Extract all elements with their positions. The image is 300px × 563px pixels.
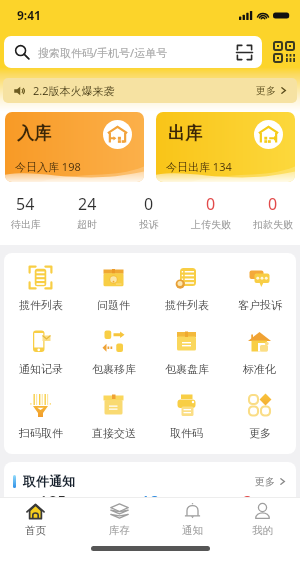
button[interactable]: 0 bbox=[180, 193, 242, 231]
button[interactable]: 54 bbox=[0, 193, 56, 231]
button[interactable]: 通知 bbox=[165, 502, 219, 542]
staticText: 通知 bbox=[182, 524, 203, 537]
staticText: 12 bbox=[141, 491, 160, 513]
staticText: 更多 bbox=[256, 84, 276, 97]
button[interactable]: 搜索取件码/手机号/运单号 bbox=[4, 36, 262, 68]
staticText: 更多 bbox=[255, 475, 275, 488]
button[interactable]: 客户投诉 bbox=[223, 265, 296, 329]
button[interactable]: 2.2版本火爆来袭 bbox=[3, 78, 297, 103]
staticText: 更多 bbox=[249, 426, 271, 440]
staticText: 0 bbox=[206, 193, 216, 215]
staticText: 待出库 bbox=[11, 218, 41, 231]
button[interactable]: 二维码 bbox=[271, 36, 297, 68]
staticText: 待通知 bbox=[233, 516, 263, 529]
staticText: 首页 bbox=[25, 524, 46, 537]
staticText: 待通知 bbox=[38, 516, 68, 529]
button[interactable]: 出库 bbox=[156, 112, 295, 182]
button[interactable]: 包裹盘库 bbox=[150, 329, 223, 393]
button[interactable]: 揽件列表 bbox=[4, 265, 77, 329]
button[interactable]: 首页 bbox=[8, 502, 62, 542]
staticText: 185 bbox=[39, 491, 67, 513]
staticText: 0 bbox=[144, 193, 154, 215]
staticText: 通知记录 bbox=[19, 362, 63, 376]
button[interactable]: 揽件列表 bbox=[150, 265, 223, 329]
button[interactable]: 0 bbox=[118, 193, 180, 231]
button[interactable]: 标准化 bbox=[223, 329, 296, 393]
staticText: 投诉 bbox=[139, 218, 159, 231]
staticText: 3 bbox=[243, 491, 253, 513]
staticText: 0 bbox=[268, 193, 278, 215]
staticText: 揽件列表 bbox=[165, 298, 209, 312]
staticText: 搜索取件码/手机号/运单号 bbox=[38, 45, 168, 60]
button[interactable]: 库存 bbox=[92, 502, 146, 542]
staticText: 24 bbox=[78, 193, 97, 215]
staticText: 取件通知 bbox=[23, 473, 75, 489]
staticText: 取件码 bbox=[170, 426, 203, 440]
button[interactable]: 更多 bbox=[255, 475, 287, 488]
button[interactable]: 12 bbox=[102, 491, 199, 529]
button[interactable]: 扫一扫 bbox=[235, 43, 254, 62]
button[interactable]: 包裹移库 bbox=[77, 329, 150, 393]
staticText: 包裹盘库 bbox=[165, 362, 209, 376]
staticText: 库存 bbox=[109, 524, 130, 537]
button[interactable]: 直接交送 bbox=[77, 393, 150, 454]
staticText: 扣款失败 bbox=[253, 218, 293, 231]
staticText: 9:41 bbox=[17, 7, 41, 23]
button[interactable]: 扫码取件 bbox=[4, 393, 77, 454]
staticText: 超时 bbox=[77, 218, 97, 231]
staticText: 直接交送 bbox=[92, 426, 136, 440]
button[interactable]: 更多 bbox=[223, 393, 296, 454]
button[interactable]: 185 bbox=[4, 491, 102, 529]
button[interactable]: 通知记录 bbox=[4, 329, 77, 393]
button[interactable]: 0 bbox=[242, 193, 300, 231]
button[interactable]: 24 bbox=[56, 193, 118, 231]
staticText: 2.2版本火爆来袭 bbox=[33, 83, 115, 98]
staticText: 今日入库 198 bbox=[15, 159, 81, 174]
staticText: 入库 bbox=[17, 123, 51, 144]
button[interactable]: 取件码 bbox=[150, 393, 223, 454]
staticText: 客户投诉 bbox=[238, 298, 282, 312]
staticText: 我的 bbox=[252, 524, 273, 537]
staticText: 出库 bbox=[168, 123, 202, 144]
staticText: 54 bbox=[16, 193, 35, 215]
staticText: 问题件 bbox=[97, 298, 130, 312]
staticText: 今日出库 134 bbox=[166, 159, 232, 174]
staticText: 扫码取件 bbox=[19, 426, 63, 440]
button[interactable]: 我的 bbox=[235, 502, 289, 542]
button[interactable]: 入库 bbox=[5, 112, 144, 182]
staticText: 包裹移库 bbox=[92, 362, 136, 376]
button[interactable]: 问题件 bbox=[77, 265, 150, 329]
staticText: 揽件列表 bbox=[19, 298, 63, 312]
button[interactable]: 3 bbox=[199, 491, 296, 529]
staticText: 标准化 bbox=[243, 362, 276, 376]
staticText: 上传失败 bbox=[191, 218, 231, 231]
